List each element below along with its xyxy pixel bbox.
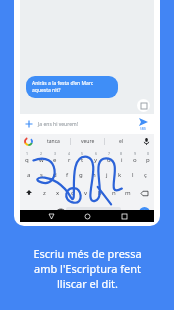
button[interactable]: Backspace [135, 184, 154, 202]
staticText: j [106, 171, 108, 179]
button[interactable]: Home [81, 210, 93, 222]
staticText: s [40, 171, 43, 179]
staticText: h [92, 171, 96, 179]
staticText: , [46, 208, 48, 216]
staticText: Ja ens hi veurem! [38, 121, 132, 128]
staticText: Escriu més de pressa amb l'Escriptura fe… [33, 246, 142, 291]
staticText: v [84, 189, 88, 197]
staticText: el [119, 138, 124, 145]
staticText: m [125, 189, 131, 197]
button[interactable]: b [93, 184, 107, 202]
button[interactable]: . [121, 202, 134, 222]
button[interactable]: f [61, 166, 74, 184]
staticText: t [81, 156, 84, 164]
button[interactable]: Voice input [138, 134, 154, 148]
button[interactable]: Message status [137, 99, 150, 112]
button[interactable]: 1 [20, 148, 34, 166]
button[interactable]: c [65, 184, 79, 202]
button[interactable]: veure [71, 134, 104, 148]
staticText: 2 [40, 151, 43, 156]
staticText: 4 [68, 151, 71, 156]
button[interactable]: ?123 [20, 202, 40, 222]
staticText: d [53, 171, 57, 179]
staticText: w [39, 156, 44, 164]
button[interactable]: z [38, 184, 51, 202]
button[interactable]: 3 [48, 148, 62, 166]
staticText: ç [144, 171, 147, 179]
staticText: 7 [108, 151, 111, 156]
button[interactable]: 6 [89, 148, 102, 166]
staticText: o [133, 156, 137, 164]
staticText: Català [88, 210, 100, 215]
button[interactable]: Enter [134, 202, 154, 222]
button[interactable]: 5 [76, 148, 89, 166]
button[interactable]: Back [45, 210, 57, 222]
button[interactable]: a [22, 166, 35, 184]
staticText: . [127, 208, 129, 216]
staticText: 5 [81, 151, 84, 156]
button[interactable]: ç [139, 166, 152, 184]
staticText: Aniràs a la festa d'en Marc aquesta nit? [32, 80, 112, 94]
button[interactable]: Català [66, 207, 121, 218]
staticText: a [27, 171, 31, 179]
button[interactable]: m [121, 184, 135, 202]
button[interactable]: Aniràs a la festa d'en Marc aquesta nit? [26, 76, 118, 98]
button[interactable]: n [107, 184, 121, 202]
button[interactable]: 2 [34, 148, 48, 166]
staticText: 9 [134, 151, 137, 156]
button[interactable]: 4 [62, 148, 76, 166]
staticText: p [146, 156, 150, 164]
button[interactable]: 9 [128, 148, 141, 166]
staticText: x [56, 189, 60, 197]
staticText: 0 [147, 151, 150, 156]
button[interactable]: x [51, 184, 65, 202]
button[interactable]: k [113, 166, 126, 184]
staticText: n [112, 189, 116, 197]
staticText: c [71, 189, 74, 197]
staticText: ?123 [25, 209, 36, 216]
button[interactable]: Change language [53, 202, 66, 222]
button[interactable]: 0 [141, 148, 154, 166]
staticText: r [68, 156, 71, 164]
staticText: u [107, 156, 111, 164]
staticText: 6 [95, 151, 98, 156]
staticText: k [118, 171, 122, 179]
staticText: 3 [54, 151, 57, 156]
staticText: e [53, 156, 57, 164]
button[interactable]: Google [20, 134, 36, 148]
button[interactable]: Shift [20, 184, 38, 202]
button[interactable]: el [105, 134, 138, 148]
button[interactable]: d [48, 166, 61, 184]
button[interactable]: Recents [118, 210, 130, 222]
staticText: q [25, 156, 29, 164]
staticText: l [132, 171, 134, 179]
staticText: y [94, 156, 98, 164]
button[interactable]: tanca [36, 134, 70, 148]
staticText: g [79, 171, 83, 179]
button[interactable]: 7 [102, 148, 115, 166]
button[interactable]: 8 [115, 148, 128, 166]
staticText: SMS [140, 127, 147, 131]
button[interactable]: h [87, 166, 100, 184]
staticText: z [43, 189, 46, 197]
button[interactable]: j [100, 166, 113, 184]
button[interactable]: v [79, 184, 93, 202]
staticText: tanca [47, 138, 60, 145]
button[interactable]: , [40, 202, 53, 222]
button[interactable]: g [74, 166, 87, 184]
button[interactable]: Add [20, 115, 38, 133]
button[interactable]: l [126, 166, 139, 184]
button[interactable]: Send [132, 114, 154, 134]
staticText: i [121, 156, 123, 164]
staticText: 8 [120, 151, 123, 156]
staticText: veure [81, 138, 95, 145]
staticText: f [66, 171, 69, 179]
staticText: b [98, 189, 102, 197]
button[interactable]: s [35, 166, 48, 184]
staticText: 1 [26, 151, 29, 156]
